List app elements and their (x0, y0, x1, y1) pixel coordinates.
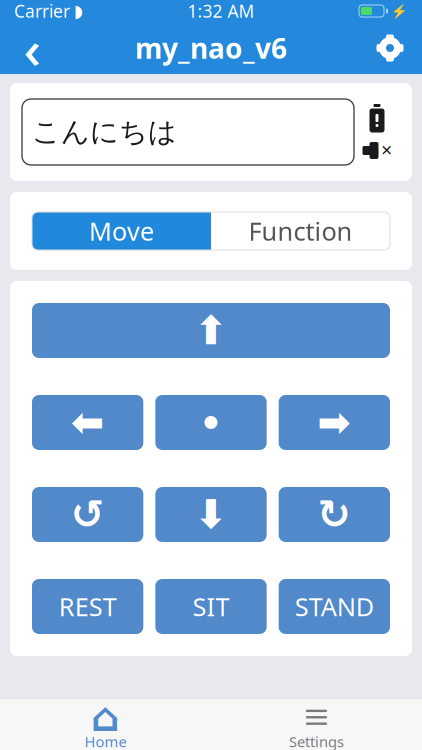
staticText: SIT (192, 590, 229, 623)
button[interactable]: Settings (368, 24, 412, 72)
staticText: Carrier (14, 0, 70, 22)
button[interactable]: STAND (279, 579, 390, 634)
button[interactable]: Move backward (155, 487, 267, 542)
staticText: Move (89, 214, 154, 248)
button[interactable]: SIT (155, 579, 267, 634)
staticText: ➡ (317, 400, 351, 445)
button[interactable]: Move forward (32, 303, 390, 358)
staticText: ↻ (317, 492, 351, 537)
button[interactable]: Stop (155, 395, 267, 450)
button[interactable]: Settings (211, 698, 422, 750)
staticText: 1:32 AM (187, 0, 254, 22)
staticText: ◗ (74, 1, 83, 21)
staticText: Function (248, 214, 352, 248)
staticText: ⬇ (194, 492, 228, 537)
staticText: ↺ (71, 492, 105, 537)
staticText: ⌂ (91, 695, 120, 740)
button[interactable]: Move left (32, 395, 143, 450)
button[interactable]: Turn right (279, 487, 390, 542)
staticText: ⬅ (71, 400, 105, 445)
button[interactable]: Move right (279, 395, 390, 450)
button[interactable]: REST (32, 579, 143, 634)
staticText: STAND (295, 590, 374, 623)
staticText: ⚡ (391, 3, 408, 19)
staticText: Settings (289, 732, 344, 750)
button[interactable]: Move (32, 212, 211, 250)
staticText: Home (84, 732, 126, 750)
staticText: ✕ (380, 142, 392, 159)
staticText: ⬆ (194, 308, 228, 353)
button[interactable]: Function (211, 212, 390, 250)
staticText: my_nao_v6 (135, 29, 287, 67)
staticText: ‹ (23, 13, 40, 83)
button[interactable]: Turn left (32, 487, 143, 542)
staticText: REST (59, 590, 117, 623)
button[interactable]: Back (10, 24, 54, 72)
staticText: こんにちは (32, 115, 177, 149)
button[interactable]: ⌂ (0, 698, 211, 750)
